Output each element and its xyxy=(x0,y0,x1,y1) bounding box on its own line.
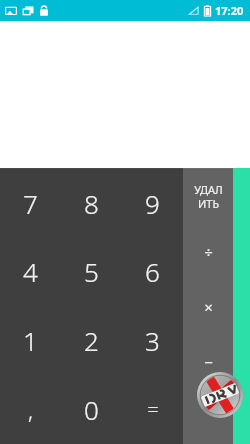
button[interactable]: УДАЛ ИТЬ xyxy=(183,169,233,224)
button[interactable]: 6 xyxy=(122,237,183,306)
staticText: 8 xyxy=(84,186,99,221)
staticText: 4 xyxy=(23,254,38,289)
button[interactable]: Equals xyxy=(233,168,250,444)
button[interactable]: ÷ xyxy=(183,224,233,279)
button[interactable]: 7 xyxy=(0,169,61,237)
staticText: 6 xyxy=(145,254,160,289)
button[interactable]: 2 xyxy=(61,306,122,375)
staticText: 1 xyxy=(23,323,38,358)
staticText: 5 xyxy=(84,254,99,289)
button[interactable]: 8 xyxy=(61,169,122,237)
button[interactable]: = xyxy=(122,375,183,444)
button[interactable]: × xyxy=(183,279,233,334)
button[interactable]: − xyxy=(183,334,233,389)
staticText: × xyxy=(204,297,213,317)
staticText: 7 xyxy=(23,186,38,221)
button[interactable]: 9 xyxy=(122,169,183,237)
staticText: УДАЛ ИТЬ xyxy=(194,182,223,211)
button[interactable]: 1 xyxy=(0,306,61,375)
staticText: 2 xyxy=(84,323,99,358)
staticText: ÷ xyxy=(204,242,213,262)
button[interactable]: 4 xyxy=(0,237,61,306)
button[interactable]: Plus xyxy=(183,389,233,444)
button[interactable]: 0 xyxy=(61,375,122,444)
button[interactable]: 3 xyxy=(122,306,183,375)
staticText: 0 xyxy=(84,392,99,427)
staticText: 9 xyxy=(145,186,160,221)
staticText: − xyxy=(204,352,213,372)
staticText: , xyxy=(28,395,33,425)
staticText: 17:20 xyxy=(215,3,244,18)
button[interactable]: 5 xyxy=(61,237,122,306)
button[interactable]: , xyxy=(0,375,61,444)
staticText: = xyxy=(147,396,159,423)
staticText: 3 xyxy=(145,323,160,358)
